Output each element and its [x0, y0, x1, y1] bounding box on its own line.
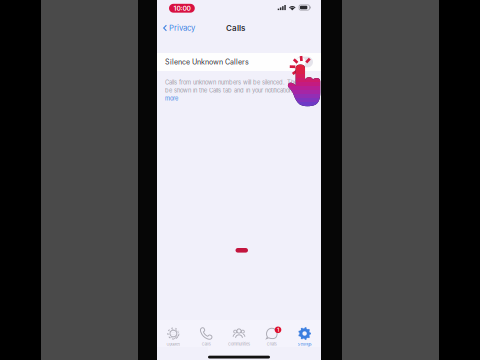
button[interactable]: Updates [157, 320, 190, 347]
staticText: 10:00 [173, 4, 190, 12]
staticText: be shown in the Calls tab and in your no… [165, 87, 313, 94]
button[interactable]: Communities [223, 320, 255, 347]
staticText: Privacy [169, 23, 195, 33]
staticText: more [165, 95, 178, 102]
staticText: Calls [226, 23, 245, 33]
staticText: Updates [166, 342, 180, 346]
staticText: 1 [277, 327, 279, 333]
staticText: Silence Unknown Callers [165, 58, 249, 66]
staticText: Settings [298, 342, 312, 346]
button[interactable]: Privacy [157, 20, 199, 36]
button[interactable]: Settings [288, 320, 321, 347]
staticText: Calls [202, 342, 211, 346]
staticText: Calls from unknown numbers will be silen… [165, 79, 300, 86]
button[interactable]: Calls [190, 320, 223, 347]
button[interactable]: 1 [255, 320, 288, 347]
button[interactable]: Silence Unknown Callers [157, 53, 321, 71]
staticText: Communities [228, 342, 250, 346]
staticText: Chats [267, 342, 277, 346]
